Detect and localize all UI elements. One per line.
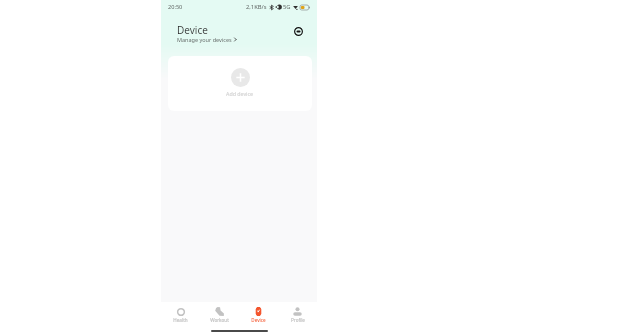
staticText: 2,1KB/s: [246, 3, 267, 11]
button[interactable]: Device: [239, 302, 278, 334]
staticText: Device: [251, 317, 266, 323]
staticText: Manage your devices: [177, 36, 232, 43]
button[interactable]: Scan device: [292, 25, 305, 38]
staticText: Add device: [226, 90, 254, 97]
staticText: 5G: [283, 3, 291, 11]
button[interactable]: Add device: [168, 56, 312, 111]
staticText: Health: [173, 317, 188, 323]
button[interactable]: Profile: [278, 302, 317, 334]
staticText: Device: [177, 23, 208, 37]
button[interactable]: Health: [161, 302, 200, 334]
staticText: Workout: [210, 317, 229, 323]
button[interactable]: Workout: [200, 302, 239, 334]
staticText: 20:50: [168, 3, 183, 11]
staticText: Profile: [291, 317, 305, 323]
